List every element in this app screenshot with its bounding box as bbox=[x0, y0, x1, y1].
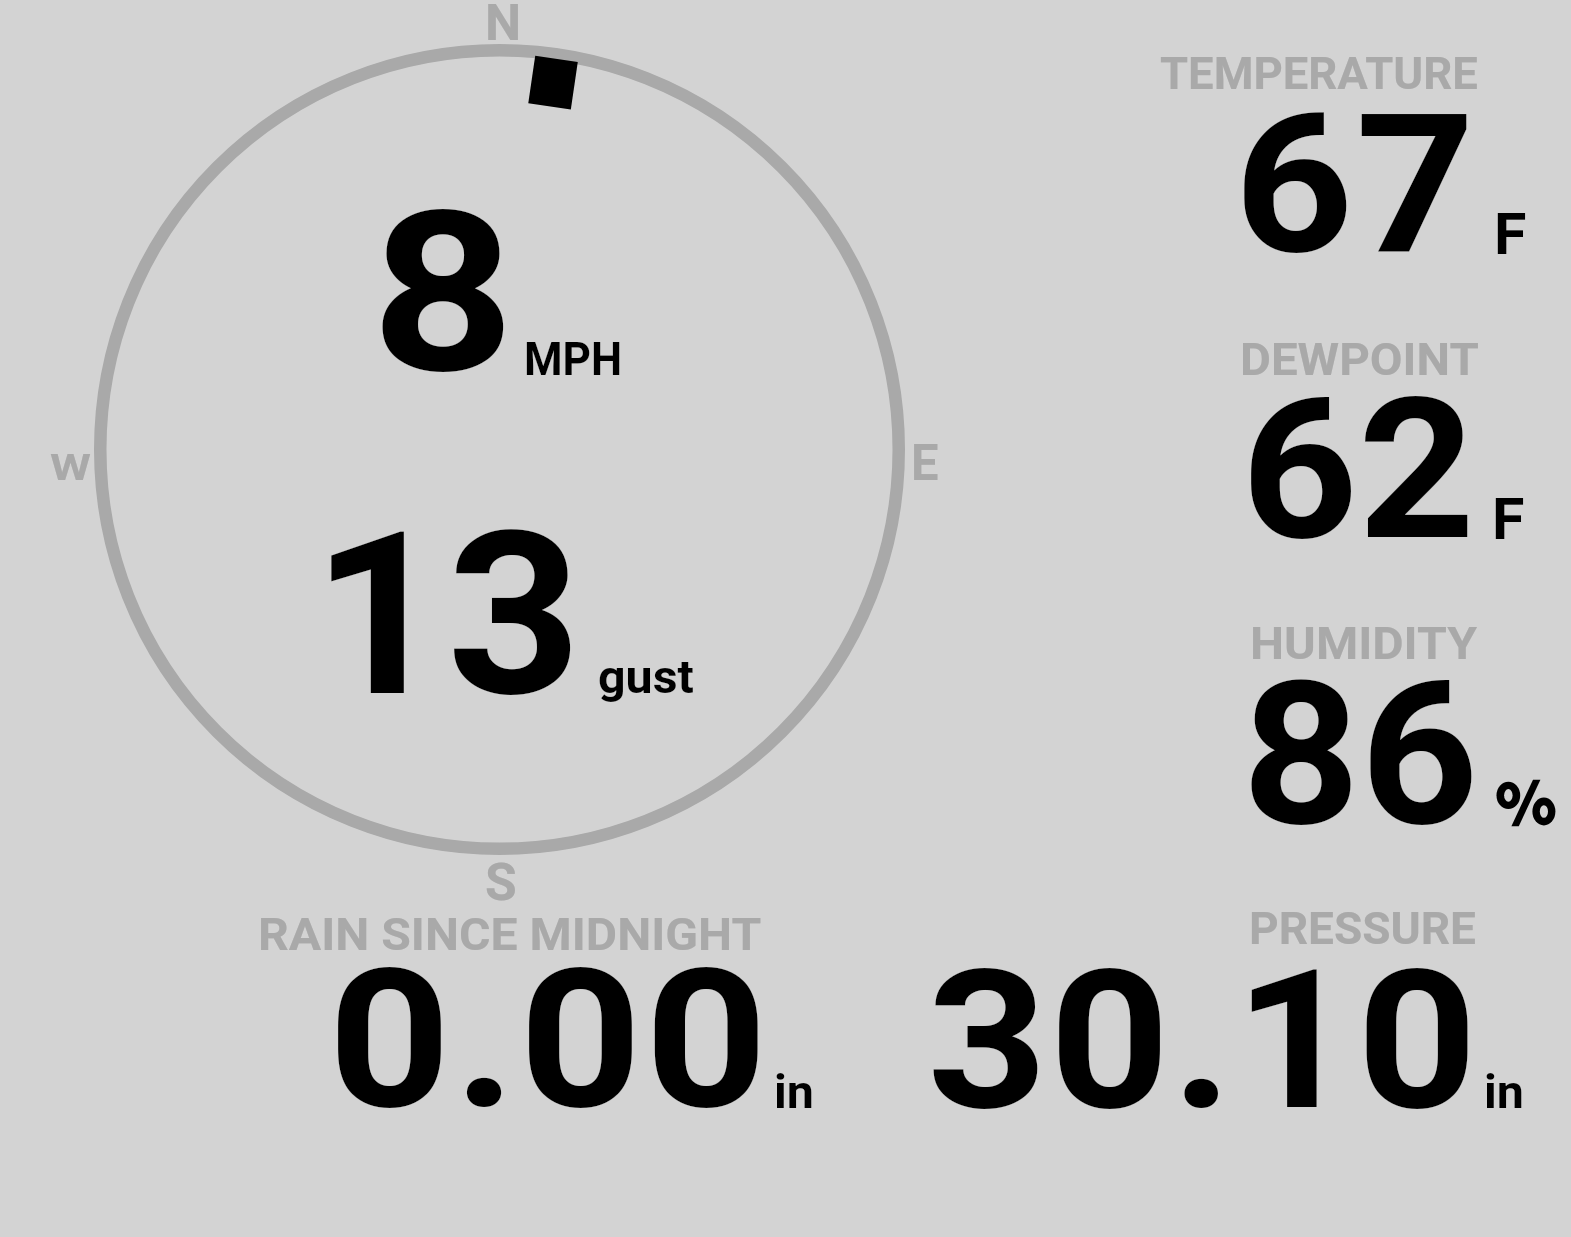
staticText: MPH bbox=[524, 332, 623, 386]
staticText: 62 bbox=[1241, 355, 1475, 584]
staticText: N bbox=[485, 0, 521, 52]
staticText: TEMPERATURE bbox=[1160, 48, 1478, 100]
staticText: in bbox=[774, 1065, 815, 1120]
staticText: 8 bbox=[371, 163, 515, 424]
staticText: F bbox=[1492, 485, 1525, 553]
button[interactable]: Rain since midnight 0.00 inches bbox=[240, 900, 840, 1130]
staticText: 0.00 bbox=[328, 927, 771, 1153]
staticText: in bbox=[1484, 1065, 1525, 1120]
staticText: W bbox=[50, 445, 91, 489]
staticText: 13 bbox=[312, 483, 583, 749]
button[interactable]: Temperature 67 degrees Fahrenheit bbox=[1100, 40, 1571, 270]
staticText: gust bbox=[598, 650, 695, 704]
staticText: S bbox=[485, 852, 518, 913]
staticText: RAIN SINCE MIDNIGHT bbox=[258, 909, 761, 961]
button[interactable]: Dewpoint 62 degrees Fahrenheit bbox=[1100, 325, 1571, 555]
staticText: E bbox=[911, 433, 939, 492]
button[interactable]: Pressure 30.10 inches bbox=[900, 900, 1540, 1130]
staticText: F bbox=[1494, 200, 1527, 268]
staticText: 86 bbox=[1242, 639, 1479, 872]
staticText: 67 bbox=[1234, 71, 1478, 298]
staticText: 30.10 bbox=[927, 927, 1479, 1154]
button[interactable]: Humidity 86 percent bbox=[1100, 610, 1571, 840]
button[interactable]: Wind direction dial, 8 miles per hour, g… bbox=[90, 40, 910, 860]
staticText: HUMIDITY bbox=[1250, 618, 1477, 670]
staticText: DEWPOINT bbox=[1240, 334, 1480, 386]
staticText: PRESSURE bbox=[1249, 903, 1477, 955]
